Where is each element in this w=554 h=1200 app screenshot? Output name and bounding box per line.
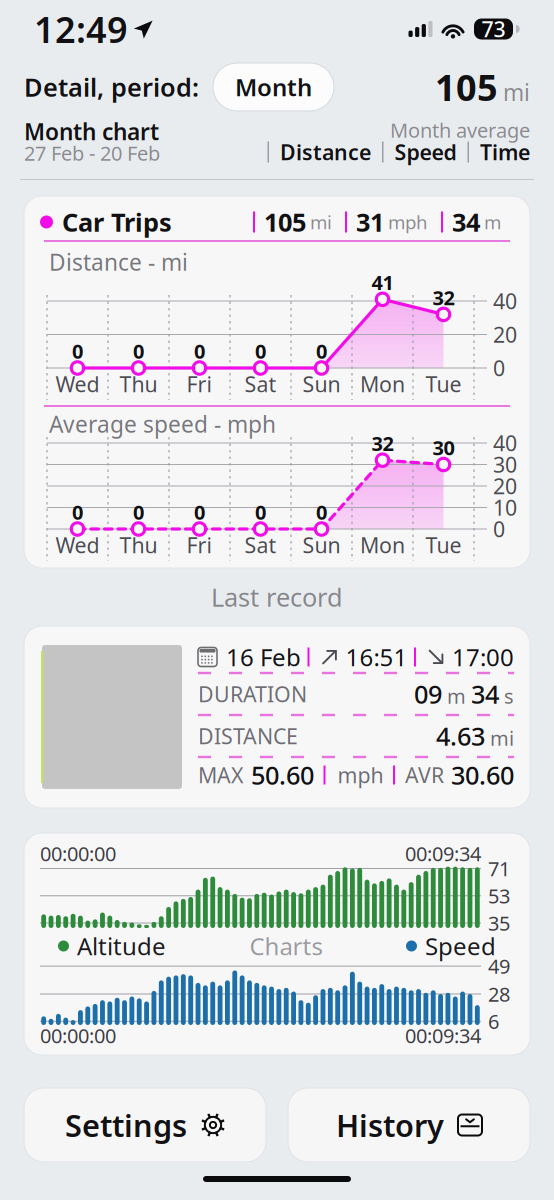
staticText: m (447, 683, 466, 709)
staticText: Sun (302, 370, 340, 398)
staticText: Sat (244, 370, 276, 398)
staticText: 0 (316, 338, 327, 364)
staticText: 09 (414, 677, 442, 711)
staticText: 40 (493, 287, 517, 315)
staticText: mi (310, 210, 332, 234)
staticText: 41 (371, 269, 393, 296)
staticText: 50.60 (251, 758, 314, 792)
staticText: 0 (194, 499, 205, 525)
staticText: 49 (488, 953, 510, 979)
staticText: Mon (360, 531, 405, 559)
staticText: Sat (244, 531, 276, 559)
staticText: Last record (211, 580, 343, 614)
staticText: 31 (356, 205, 384, 239)
staticText: 0 (133, 499, 144, 525)
staticText: DISTANCE (198, 722, 298, 750)
staticText: mi (490, 725, 514, 751)
staticText: 34 (471, 677, 499, 711)
staticText: 73 (481, 15, 505, 43)
staticText: Mon (360, 370, 405, 398)
staticText: 17:00 (452, 641, 514, 673)
staticText: 12:49 (34, 5, 128, 53)
staticText: Thu (119, 531, 157, 559)
staticText: Sun (302, 531, 340, 559)
staticText: 34 (452, 205, 480, 239)
staticText: mph (388, 210, 428, 234)
staticText: mph (337, 761, 383, 789)
button[interactable]: Settings (24, 1088, 266, 1162)
staticText: Thu (119, 370, 157, 398)
staticText: Charts (249, 930, 322, 962)
staticText: 105 (264, 205, 306, 239)
staticText: MAX (198, 761, 244, 789)
staticText: Month chart (24, 116, 159, 146)
staticText: 00:00:00 (40, 840, 116, 867)
staticText: Average speed - mph (49, 409, 276, 439)
staticText: s (504, 683, 514, 709)
staticText: 32 (371, 430, 393, 456)
staticText: 10 (493, 493, 517, 522)
staticText: Wed (55, 531, 99, 559)
staticText: 0 (255, 499, 266, 525)
staticText: Tue (425, 370, 461, 398)
staticText: 20 (493, 472, 517, 500)
staticText: mi (503, 77, 530, 107)
staticText: Settings (65, 1105, 187, 1145)
staticText: 0 (133, 338, 144, 364)
staticText: 35 (488, 910, 510, 936)
staticText: 30 (432, 434, 454, 461)
staticText: 20 (493, 320, 517, 349)
staticText: 00:09:34 (405, 1022, 481, 1049)
staticText: Speed (394, 138, 456, 166)
staticText: 28 (488, 981, 510, 1007)
staticText: AVR (405, 761, 444, 789)
staticText: DURATION (198, 680, 307, 708)
staticText: Fri (186, 531, 212, 559)
staticText: 30 (493, 450, 517, 479)
staticText: 00:00:00 (40, 1022, 116, 1049)
staticText: 30.60 (451, 758, 514, 792)
staticText: 4.63 (436, 719, 485, 753)
staticText: 105 (435, 63, 498, 111)
staticText: m (484, 210, 501, 234)
staticText: Car Trips (62, 205, 172, 239)
staticText: Wed (55, 370, 99, 398)
staticText: Detail, period: (24, 70, 199, 104)
staticText: 27 Feb - 20 Feb (24, 140, 160, 166)
staticText: Distance (280, 138, 371, 166)
staticText: Altitude (77, 930, 166, 962)
staticText: 0 (493, 515, 505, 543)
button[interactable]: Month (213, 63, 334, 111)
staticText: Speed (425, 930, 496, 962)
staticText: 32 (432, 284, 454, 311)
staticText: 0 (194, 338, 205, 364)
staticText: History (336, 1105, 444, 1145)
staticText: 71 (488, 855, 510, 882)
staticText: 40 (493, 429, 517, 457)
staticText: 0 (72, 499, 83, 525)
staticText: 0 (316, 499, 327, 525)
staticText: Time (480, 138, 530, 166)
staticText: Month (235, 71, 312, 103)
staticText: Month average (390, 117, 530, 143)
staticText: 00:09:34 (405, 840, 481, 867)
staticText: 6 (488, 1008, 499, 1035)
staticText: Tue (425, 531, 461, 559)
staticText: 0 (255, 338, 266, 364)
staticText: 53 (488, 882, 510, 909)
staticText: 0 (72, 338, 83, 364)
staticText: 16 Feb (226, 641, 301, 673)
button[interactable]: History (288, 1088, 530, 1162)
staticText: 16:51 (345, 641, 407, 673)
staticText: Distance - mi (49, 247, 188, 277)
staticText: 0 (493, 354, 505, 382)
staticText: Fri (186, 370, 212, 398)
